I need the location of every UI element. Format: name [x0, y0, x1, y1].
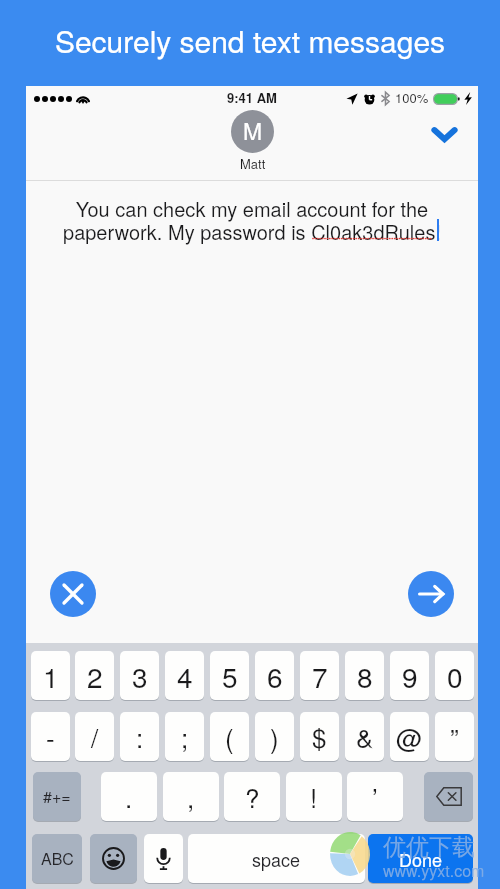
- button[interactable]: :: [120, 712, 159, 761]
- staticText: 优优下载: [383, 833, 475, 862]
- button[interactable]: Cancel: [50, 571, 96, 617]
- button[interactable]: ’: [347, 772, 403, 821]
- staticText: ): [270, 718, 279, 755]
- button[interactable]: ?: [224, 772, 280, 821]
- button[interactable]: 2: [75, 651, 114, 700]
- staticText: (: [225, 718, 234, 755]
- staticText: Securely send text messages: [0, 19, 500, 62]
- button[interactable]: 9: [390, 651, 429, 700]
- staticText: www.yyxt.com: [383, 859, 485, 882]
- staticText: ;: [181, 718, 189, 755]
- staticText: 3: [132, 656, 148, 696]
- button[interactable]: (: [210, 712, 249, 761]
- button[interactable]: ,: [163, 772, 219, 821]
- button[interactable]: !: [286, 772, 342, 821]
- button[interactable]: ;: [165, 712, 204, 761]
- staticText: &: [356, 718, 374, 755]
- button[interactable]: &: [345, 712, 384, 761]
- staticText: 9:41 AM: [227, 88, 277, 107]
- button[interactable]: #+=: [33, 772, 81, 821]
- staticText: .: [125, 778, 133, 815]
- button[interactable]: space: [188, 834, 365, 883]
- staticText: /: [91, 718, 99, 755]
- button[interactable]: ABC: [32, 834, 82, 883]
- button[interactable]: @: [390, 712, 429, 761]
- staticText: @: [396, 718, 423, 755]
- staticText: !: [310, 778, 318, 815]
- staticText: ’: [372, 778, 378, 815]
- staticText: ”: [450, 718, 459, 755]
- button[interactable]: Done: [368, 834, 473, 883]
- button[interactable]: 5: [210, 651, 249, 700]
- staticText: 2: [87, 656, 103, 696]
- button[interactable]: Emoji: [90, 834, 137, 883]
- staticText: ,: [187, 778, 195, 815]
- staticText: space: [252, 846, 301, 872]
- staticText: $: [312, 718, 327, 755]
- button[interactable]: 8: [345, 651, 384, 700]
- button[interactable]: Send: [408, 571, 454, 617]
- staticText: ?: [245, 778, 260, 815]
- staticText: :: [136, 718, 144, 755]
- staticText: You can check my email account for the p…: [48, 194, 456, 246]
- staticText: 4: [177, 656, 193, 696]
- button[interactable]: 0: [435, 651, 474, 700]
- staticText: -: [46, 718, 55, 755]
- button[interactable]: 4: [165, 651, 204, 700]
- button[interactable]: /: [75, 712, 114, 761]
- staticText: 6: [267, 656, 283, 696]
- staticText: 5: [222, 656, 238, 696]
- staticText: #+=: [43, 785, 71, 808]
- staticText: Done: [399, 846, 443, 872]
- staticText: M: [243, 114, 263, 147]
- button[interactable]: 6: [255, 651, 294, 700]
- button[interactable]: Collapse: [428, 118, 460, 150]
- button[interactable]: 3: [120, 651, 159, 700]
- button[interactable]: Delete: [424, 772, 473, 821]
- staticText: ABC: [41, 847, 74, 870]
- staticText: 8: [357, 656, 373, 696]
- button[interactable]: ): [255, 712, 294, 761]
- button[interactable]: Voice input: [144, 834, 183, 883]
- staticText: 1: [43, 656, 59, 696]
- staticText: 0: [447, 656, 463, 696]
- staticText: 7: [312, 656, 328, 696]
- button[interactable]: -: [31, 712, 70, 761]
- staticText: 100%: [395, 88, 429, 107]
- staticText: 9: [402, 656, 418, 696]
- button[interactable]: ”: [435, 712, 474, 761]
- staticText: Matt: [240, 154, 266, 173]
- button[interactable]: 7: [300, 651, 339, 700]
- button[interactable]: 1: [31, 651, 70, 700]
- button[interactable]: $: [300, 712, 339, 761]
- button[interactable]: .: [101, 772, 157, 821]
